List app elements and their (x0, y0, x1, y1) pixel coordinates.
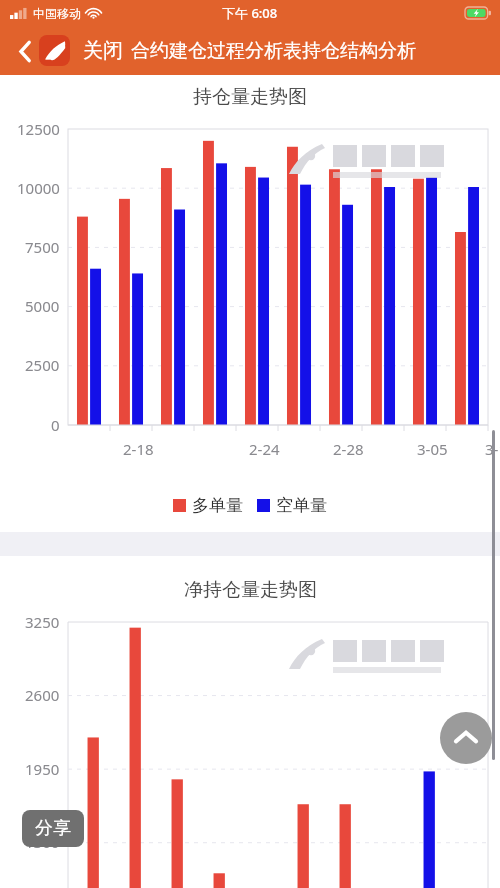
staticText: 12500 (17, 119, 60, 139)
staticText: 下午 6:08 (222, 4, 278, 22)
staticText: 持仓量走势图 (193, 85, 307, 109)
staticText: 净持仓量走势图 (184, 578, 317, 602)
staticText: 2-28 (333, 439, 364, 459)
staticText: 合约建仓过程分析表持仓结构分析 (131, 39, 416, 63)
button[interactable]: 关闭 (83, 38, 123, 63)
staticText: 10000 (17, 178, 60, 198)
staticText: 1300 (25, 832, 60, 852)
staticText: 空单量 (276, 495, 327, 516)
button[interactable]: Scroll to top (440, 712, 492, 764)
staticText: 3-12 (485, 439, 500, 459)
staticText: 7500 (25, 237, 60, 257)
button[interactable]: Back (12, 29, 38, 73)
staticText: 3-05 (417, 439, 448, 459)
staticText: 2600 (25, 685, 60, 705)
button[interactable]: Home (39, 35, 70, 66)
button[interactable]: 分享 (22, 810, 84, 847)
staticText: 5000 (25, 296, 60, 316)
staticText: 3250 (25, 612, 60, 632)
staticText: 分享 (35, 817, 71, 840)
staticText: 关闭 (83, 38, 123, 63)
staticText: 多单量 (192, 495, 243, 516)
staticText: 中国移动 (33, 6, 81, 21)
staticText: 0 (51, 415, 60, 435)
staticText: 2500 (25, 355, 60, 375)
staticText: 2-18 (123, 439, 154, 459)
staticText: 2-24 (249, 439, 280, 459)
staticText: 1950 (25, 759, 60, 779)
